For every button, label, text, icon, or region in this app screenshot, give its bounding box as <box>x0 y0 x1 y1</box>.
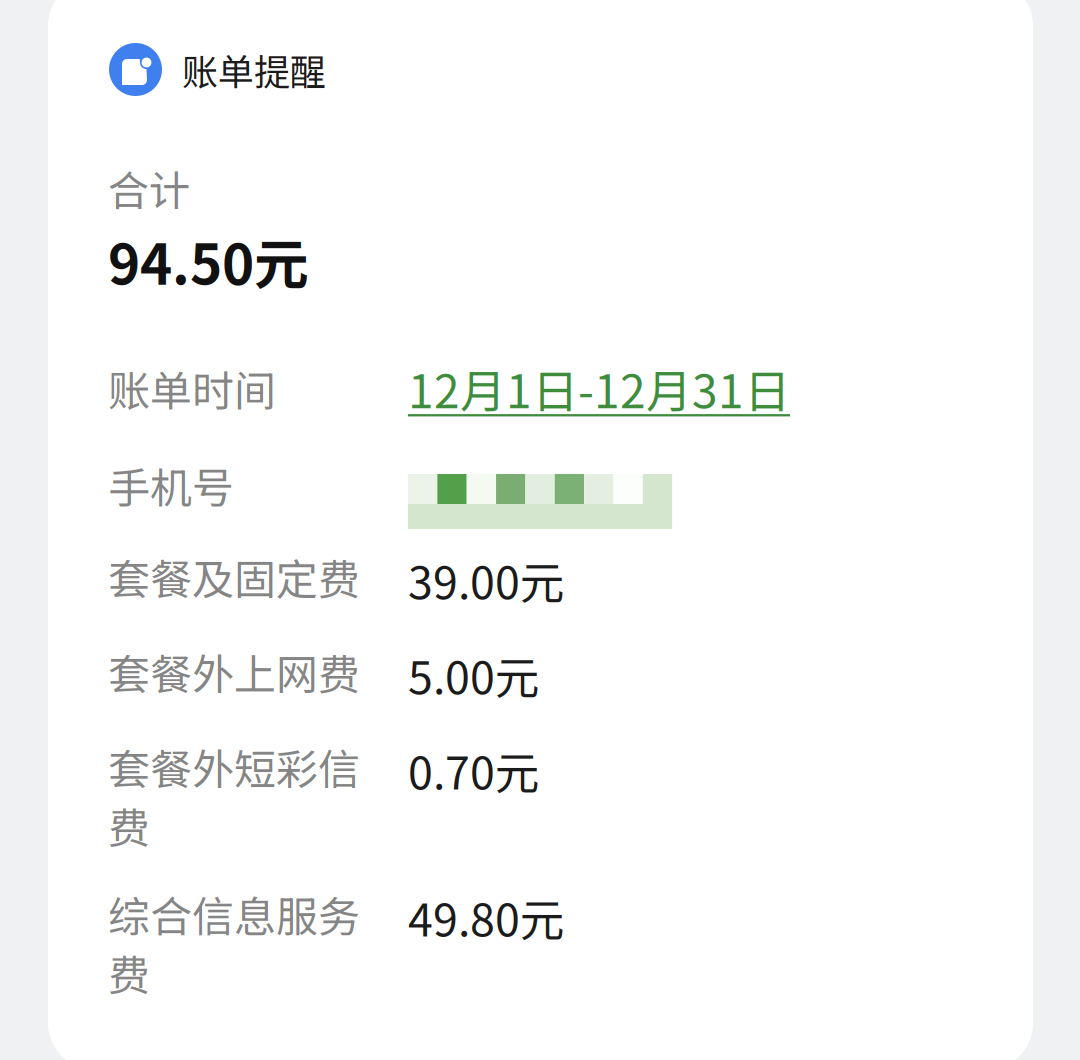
staticText: 套餐外短彩信费 <box>108 738 360 854</box>
staticText: 账单时间 <box>108 359 276 417</box>
staticText: 账单提醒 <box>182 43 326 95</box>
button[interactable]: 12月1日-12月31日 <box>408 355 790 422</box>
staticText: 套餐外上网费 <box>108 642 360 701</box>
button[interactable]: 账单提醒 <box>108 43 1080 96</box>
staticText: 12月1日-12月31日 <box>408 355 790 422</box>
staticText: 39.00元 <box>408 547 565 612</box>
staticText: 5.00元 <box>408 642 540 707</box>
staticText: 94.50元 <box>108 221 309 300</box>
staticText: 套餐及固定费 <box>108 547 360 606</box>
staticText: 合计 <box>108 158 190 218</box>
staticText: 综合信息服务费 <box>108 885 360 1001</box>
staticText: 手机号 <box>108 456 234 514</box>
staticText: 0.70元 <box>408 738 540 802</box>
staticText: 49.80元 <box>408 885 565 949</box>
